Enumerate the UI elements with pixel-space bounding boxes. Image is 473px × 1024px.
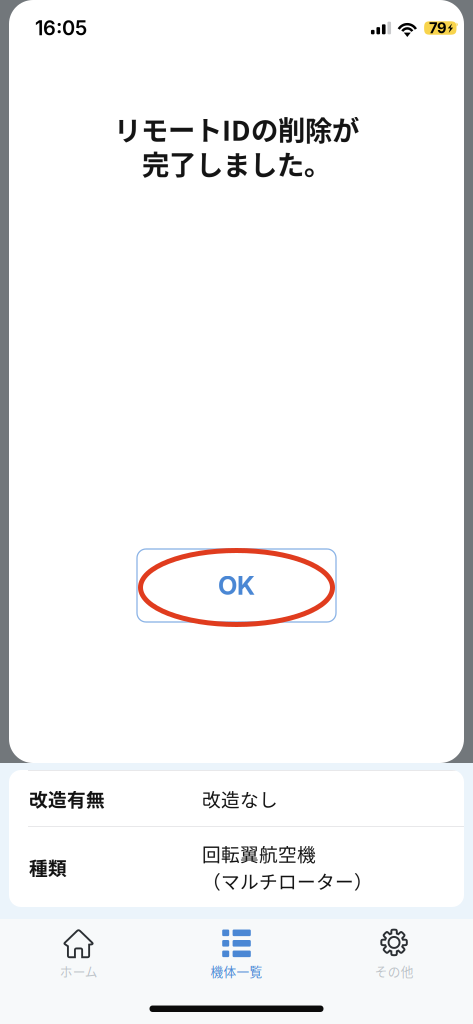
staticText: 回転翼航空機	[202, 840, 316, 867]
staticText: 79	[429, 19, 447, 37]
button[interactable]: その他	[315, 920, 473, 1023]
staticText: 改造有無	[29, 785, 105, 812]
staticText: 完了しました。	[142, 144, 331, 183]
staticText: 改造なし	[202, 785, 278, 812]
button[interactable]: 機体一覧	[158, 920, 315, 1023]
button[interactable]: OK	[137, 549, 336, 622]
staticText: リモートIDの削除が	[114, 109, 359, 149]
staticText: （マルチローター）	[202, 867, 373, 894]
staticText: ホーム	[60, 962, 98, 980]
staticText: 種類	[29, 853, 67, 880]
staticText: 機体一覧	[210, 962, 262, 980]
staticText: 16:05	[35, 16, 87, 40]
staticText: その他	[375, 962, 414, 980]
staticText: OK	[218, 570, 255, 601]
button[interactable]: ホーム	[0, 920, 158, 1023]
